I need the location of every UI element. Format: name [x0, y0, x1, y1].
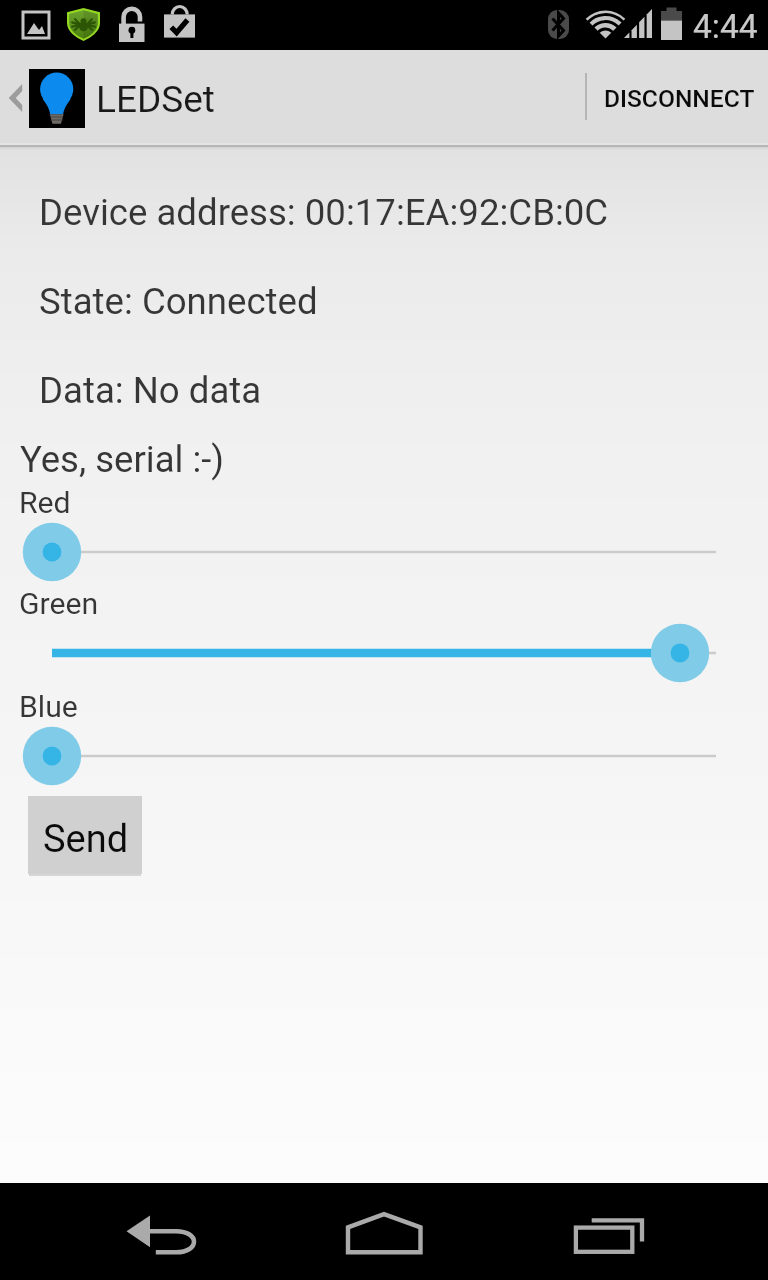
staticText: DISCONNECT	[604, 84, 755, 113]
button[interactable]: Home	[256, 1183, 512, 1280]
staticText: Send	[43, 817, 129, 862]
staticText: Yes, serial :-)	[20, 438, 225, 481]
button[interactable]: DISCONNECT	[587, 50, 768, 143]
staticText: Device address: 00:17:EA:92:CB:0C	[39, 191, 609, 234]
staticText: Blue	[19, 689, 78, 724]
button[interactable]: Recent apps	[512, 1183, 768, 1280]
button[interactable]: Blue level	[20, 726, 720, 786]
staticText: Red	[19, 485, 71, 520]
staticText: 4:44	[693, 7, 758, 46]
button[interactable]: Back	[0, 1183, 256, 1280]
button[interactable]: Send	[28, 796, 142, 874]
staticText: State: Connected	[39, 280, 318, 323]
button[interactable]: Red level	[20, 522, 720, 582]
staticText: Data: No data	[39, 369, 262, 412]
staticText: LEDSet	[96, 78, 215, 121]
staticText: Green	[19, 586, 99, 621]
button[interactable]: Green level	[20, 623, 720, 683]
button[interactable]: Navigate up	[0, 50, 250, 143]
